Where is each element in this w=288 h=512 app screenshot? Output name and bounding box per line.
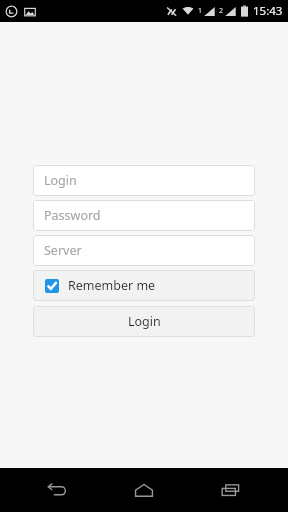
staticText: Login xyxy=(44,172,77,189)
staticText: 1 xyxy=(198,6,203,16)
button[interactable]: Recent apps xyxy=(201,468,261,512)
button[interactable]: Remember me xyxy=(33,270,255,301)
button[interactable]: Login xyxy=(33,306,255,337)
staticText: 2 xyxy=(219,6,224,16)
staticText: Remember me xyxy=(68,277,156,294)
button[interactable]: Password xyxy=(33,200,255,231)
button[interactable]: Back xyxy=(27,468,87,512)
staticText: Server xyxy=(44,242,82,259)
staticText: Login xyxy=(128,313,161,330)
button[interactable]: Login xyxy=(33,165,255,196)
button[interactable]: Server xyxy=(33,235,255,266)
staticText: Password xyxy=(44,207,101,224)
button[interactable]: Home xyxy=(114,468,174,512)
staticText: 15:43 xyxy=(253,3,283,19)
